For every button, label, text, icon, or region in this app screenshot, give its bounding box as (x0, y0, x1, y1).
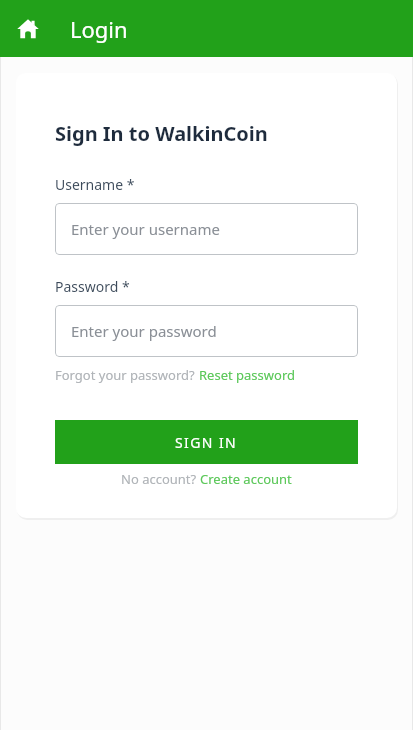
staticText: Enter your username (71, 219, 220, 239)
staticText: Username * (55, 175, 135, 194)
button[interactable]: Create account (200, 470, 292, 488)
staticText: Sign In to WalkinCoin (55, 120, 268, 147)
button[interactable]: SIGN IN (55, 420, 358, 464)
button[interactable]: Reset password (199, 366, 295, 384)
button[interactable]: Home (8, 9, 48, 49)
button[interactable]: Enter your username (55, 203, 358, 255)
staticText: No account? (121, 470, 200, 488)
staticText: Forgot your password? (55, 366, 199, 384)
staticText: Reset password (199, 366, 295, 384)
staticText: Password * (55, 277, 130, 296)
button[interactable]: Enter your password (55, 305, 358, 357)
staticText: Enter your password (71, 321, 217, 341)
staticText: SIGN IN (175, 433, 238, 452)
staticText: Login (70, 14, 128, 44)
staticText: Create account (200, 470, 292, 488)
